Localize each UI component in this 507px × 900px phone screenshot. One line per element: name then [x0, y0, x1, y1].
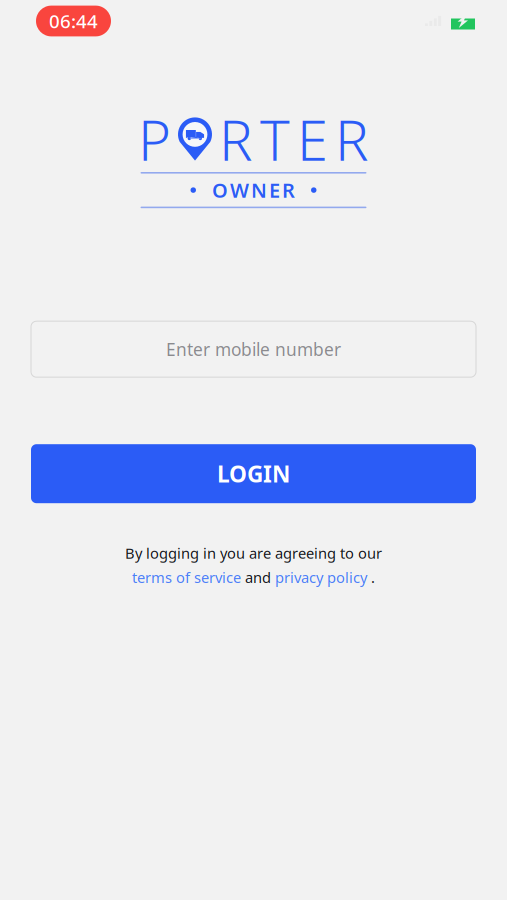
staticText: Enter mobile number	[166, 338, 341, 361]
button[interactable]: LOGIN	[31, 444, 476, 503]
staticText: E	[297, 102, 328, 176]
staticText: E	[269, 177, 280, 203]
staticText: .	[371, 568, 375, 587]
staticText: O	[212, 177, 228, 203]
button[interactable]: Enter mobile number	[31, 321, 476, 377]
staticText: N	[251, 177, 267, 203]
staticText: privacy policy	[275, 568, 367, 587]
staticText: W	[230, 177, 249, 203]
staticText: terms of service	[132, 568, 241, 587]
staticText: By logging in you are agreeing to our	[125, 543, 382, 563]
button[interactable]: terms of service	[132, 568, 241, 587]
staticText: P	[138, 102, 171, 176]
staticText: 06:44	[49, 9, 98, 33]
staticText: and	[245, 568, 271, 587]
staticText: R	[335, 102, 369, 176]
staticText: T	[260, 102, 290, 176]
button[interactable]: privacy policy	[275, 568, 367, 587]
staticText: R	[219, 102, 253, 176]
staticText: LOGIN	[217, 459, 290, 489]
staticText: R	[282, 177, 295, 203]
